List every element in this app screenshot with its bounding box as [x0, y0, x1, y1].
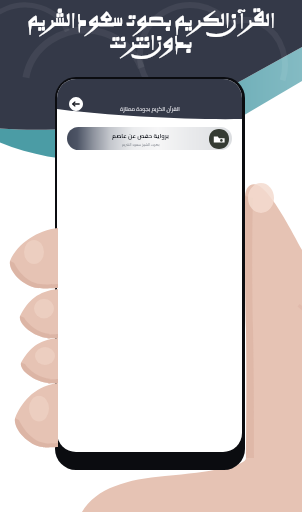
button[interactable]: Open mushaf	[209, 129, 229, 149]
staticText: بصوت الشيخ سعود الشريم	[122, 141, 160, 148]
staticText: بدون انترنت	[0, 24, 302, 68]
staticText: القرآن الكريم بصوت سعود الشريم	[0, 2, 302, 46]
staticText: برواية حفص عن عاصم	[112, 130, 169, 141]
button[interactable]: Back	[69, 97, 83, 111]
staticText: القرآن الكريم بجودة ممتازة	[120, 104, 180, 114]
button[interactable]: برواية حفص عن عاصم	[67, 127, 232, 150]
